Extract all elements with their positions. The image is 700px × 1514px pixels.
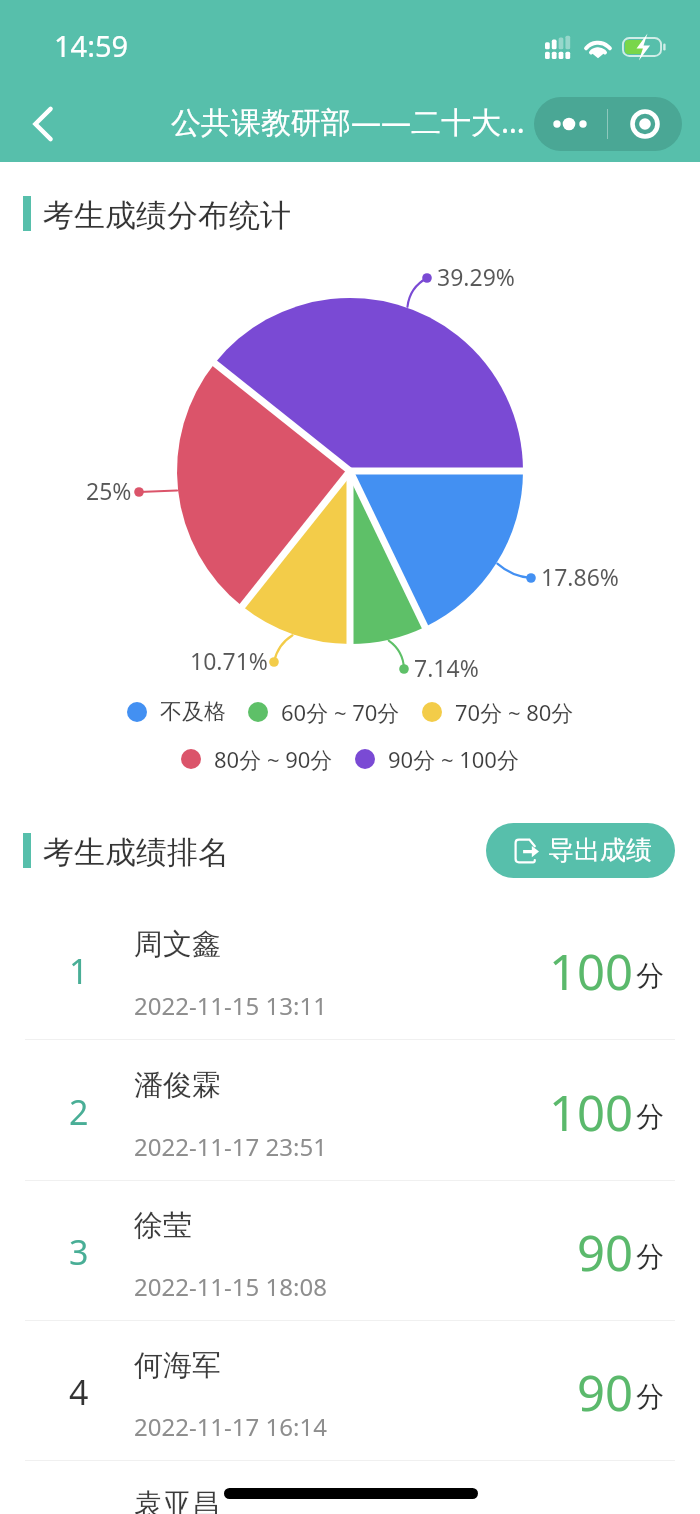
staticText: 公共课教研部——二十大… [171,101,525,142]
staticText: 徐莹 [134,1207,192,1244]
button[interactable]: 4 [0,1321,700,1461]
button[interactable]: 2 [0,1041,700,1181]
staticText: 3 [69,1229,89,1275]
staticText: 何海军 [134,1347,221,1384]
staticText: 100 [549,1079,634,1146]
button[interactable]: 5 [0,1460,700,1514]
button[interactable]: Close mini program [608,97,682,151]
staticText: 分 [636,1379,664,1414]
button[interactable]: Back [14,95,72,153]
staticText: 导出成绩 [548,834,652,867]
staticText: 1 [69,948,89,994]
staticText: 2022-11-17 23:51 [134,1130,327,1163]
staticText: 分 [636,1099,664,1134]
staticText: 100 [549,938,634,1005]
staticText: 考生成绩排名 [43,833,229,868]
staticText: 考生成绩分布统计 [43,196,291,231]
button[interactable]: More options [534,97,607,151]
staticText: 4 [69,1369,89,1415]
staticText: 70分 ~ 80分 [455,697,574,727]
staticText: 39.29% [437,261,515,292]
staticText: 分 [636,1239,664,1274]
staticText: 不及格 [160,698,226,726]
staticText: 10.71% [190,645,268,676]
staticText: 分 [636,958,664,993]
staticText: 2022-11-15 18:08 [134,1270,327,1303]
staticText: 2 [69,1089,89,1135]
staticText: 2022-11-17 16:14 [134,1410,327,1443]
staticText: 17.86% [541,561,619,592]
staticText: 90 [577,1359,634,1426]
staticText: 潘俊霖 [134,1067,221,1104]
staticText: 周文鑫 [134,926,221,963]
staticText: 90 [577,1219,634,1286]
staticText: 袁亚昌 [134,1486,221,1514]
staticText: 90分 ~ 100分 [388,744,519,774]
staticText: 2022-11-15 13:11 [134,989,327,1022]
staticText: 80分 ~ 90分 [214,744,333,774]
staticText: 14:59 [54,26,129,65]
staticText: 25% [86,475,132,506]
button[interactable]: 3 [0,1181,700,1321]
button[interactable]: 1 [0,900,700,1040]
button[interactable]: 导出成绩 [486,823,675,878]
staticText: 60分 ~ 70分 [281,697,400,727]
staticText: 7.14% [414,652,479,683]
